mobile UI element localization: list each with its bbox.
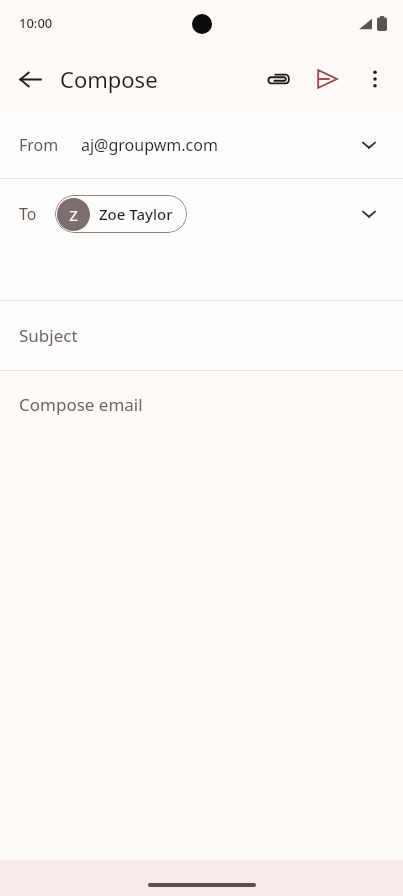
staticText: Subject [19, 324, 78, 347]
button[interactable]: Back [6, 55, 54, 103]
staticText: Compose [60, 64, 158, 94]
staticText: Zoe Taylor [99, 204, 173, 224]
other: Expand from [351, 127, 387, 163]
other: Expand recipients [351, 196, 387, 232]
staticText: Compose email [19, 393, 143, 416]
button[interactable]: Compose email [0, 371, 403, 437]
button[interactable]: To [0, 179, 403, 300]
button[interactable]: Attach file [255, 55, 303, 103]
staticText: To [19, 203, 37, 225]
staticText: From [19, 134, 59, 156]
button[interactable]: From [0, 112, 403, 178]
button[interactable]: More options [351, 55, 399, 103]
staticText: aj@groupwm.com [81, 134, 218, 156]
button[interactable]: Subject [0, 301, 403, 370]
button[interactable]: Send [303, 55, 351, 103]
staticText: 10:00 [19, 14, 53, 32]
staticText: Z [69, 205, 78, 225]
button[interactable]: Z [55, 195, 187, 233]
